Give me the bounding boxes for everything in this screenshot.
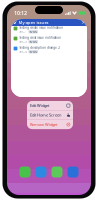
staticText: TO DO (29, 50, 37, 53)
button[interactable]: Safari (35, 166, 46, 177)
staticText: TO DO (29, 40, 37, 43)
staticText: Remove Widget (30, 122, 57, 127)
button[interactable]: App Store (67, 166, 78, 177)
staticText: Testing description change 2 (19, 46, 60, 49)
button[interactable]: Remove Widget (27, 120, 73, 129)
button[interactable]: Messages (51, 166, 62, 177)
button[interactable]: My open issues (11, 19, 87, 97)
staticText: My open issues (18, 20, 48, 25)
staticText: Testing creat issue notification (19, 36, 61, 39)
button[interactable]: Edit Home Screen (27, 110, 73, 120)
staticText: Testing create issue notification (19, 26, 63, 29)
staticText: SVC-4 (19, 50, 27, 53)
button[interactable]: Edit Widget (27, 101, 73, 110)
staticText: Edit Widget (30, 103, 49, 108)
staticText: Edit Home Screen (30, 112, 61, 118)
staticText: 10:12 (14, 9, 27, 17)
staticText: TO DO (29, 30, 37, 33)
staticText: SVC-3 (19, 40, 27, 43)
staticText: SVC-1 (19, 30, 27, 33)
button[interactable]: Phone (19, 166, 30, 177)
